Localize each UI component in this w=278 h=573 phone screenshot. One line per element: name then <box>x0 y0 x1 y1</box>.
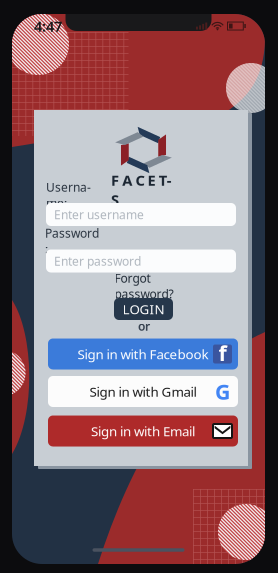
staticText: Username: <box>46 179 91 211</box>
staticText: Password: <box>45 225 99 257</box>
staticText: 4:47 <box>34 16 62 36</box>
staticText: FACETS <box>111 170 178 190</box>
button[interactable]: Forgot password? <box>96 279 192 293</box>
button[interactable]: LOGIN <box>114 298 173 320</box>
staticText: Enter username <box>54 206 144 222</box>
staticText: or <box>138 318 150 334</box>
staticText: Enter password <box>54 253 141 269</box>
button[interactable]: Sign in with Email <box>48 415 238 446</box>
staticText: Sign in with Email <box>91 422 195 440</box>
button[interactable]: Sign in with Facebook <box>48 338 238 369</box>
staticText: Sign in with Gmail <box>89 383 196 400</box>
staticText: G <box>215 377 230 406</box>
staticText: f <box>218 339 226 367</box>
staticText: Sign in with Facebook <box>77 345 208 363</box>
staticText: LOGIN <box>122 300 164 318</box>
button[interactable]: Sign in with Gmail <box>48 376 238 407</box>
staticText: Forgot password? <box>114 270 173 302</box>
